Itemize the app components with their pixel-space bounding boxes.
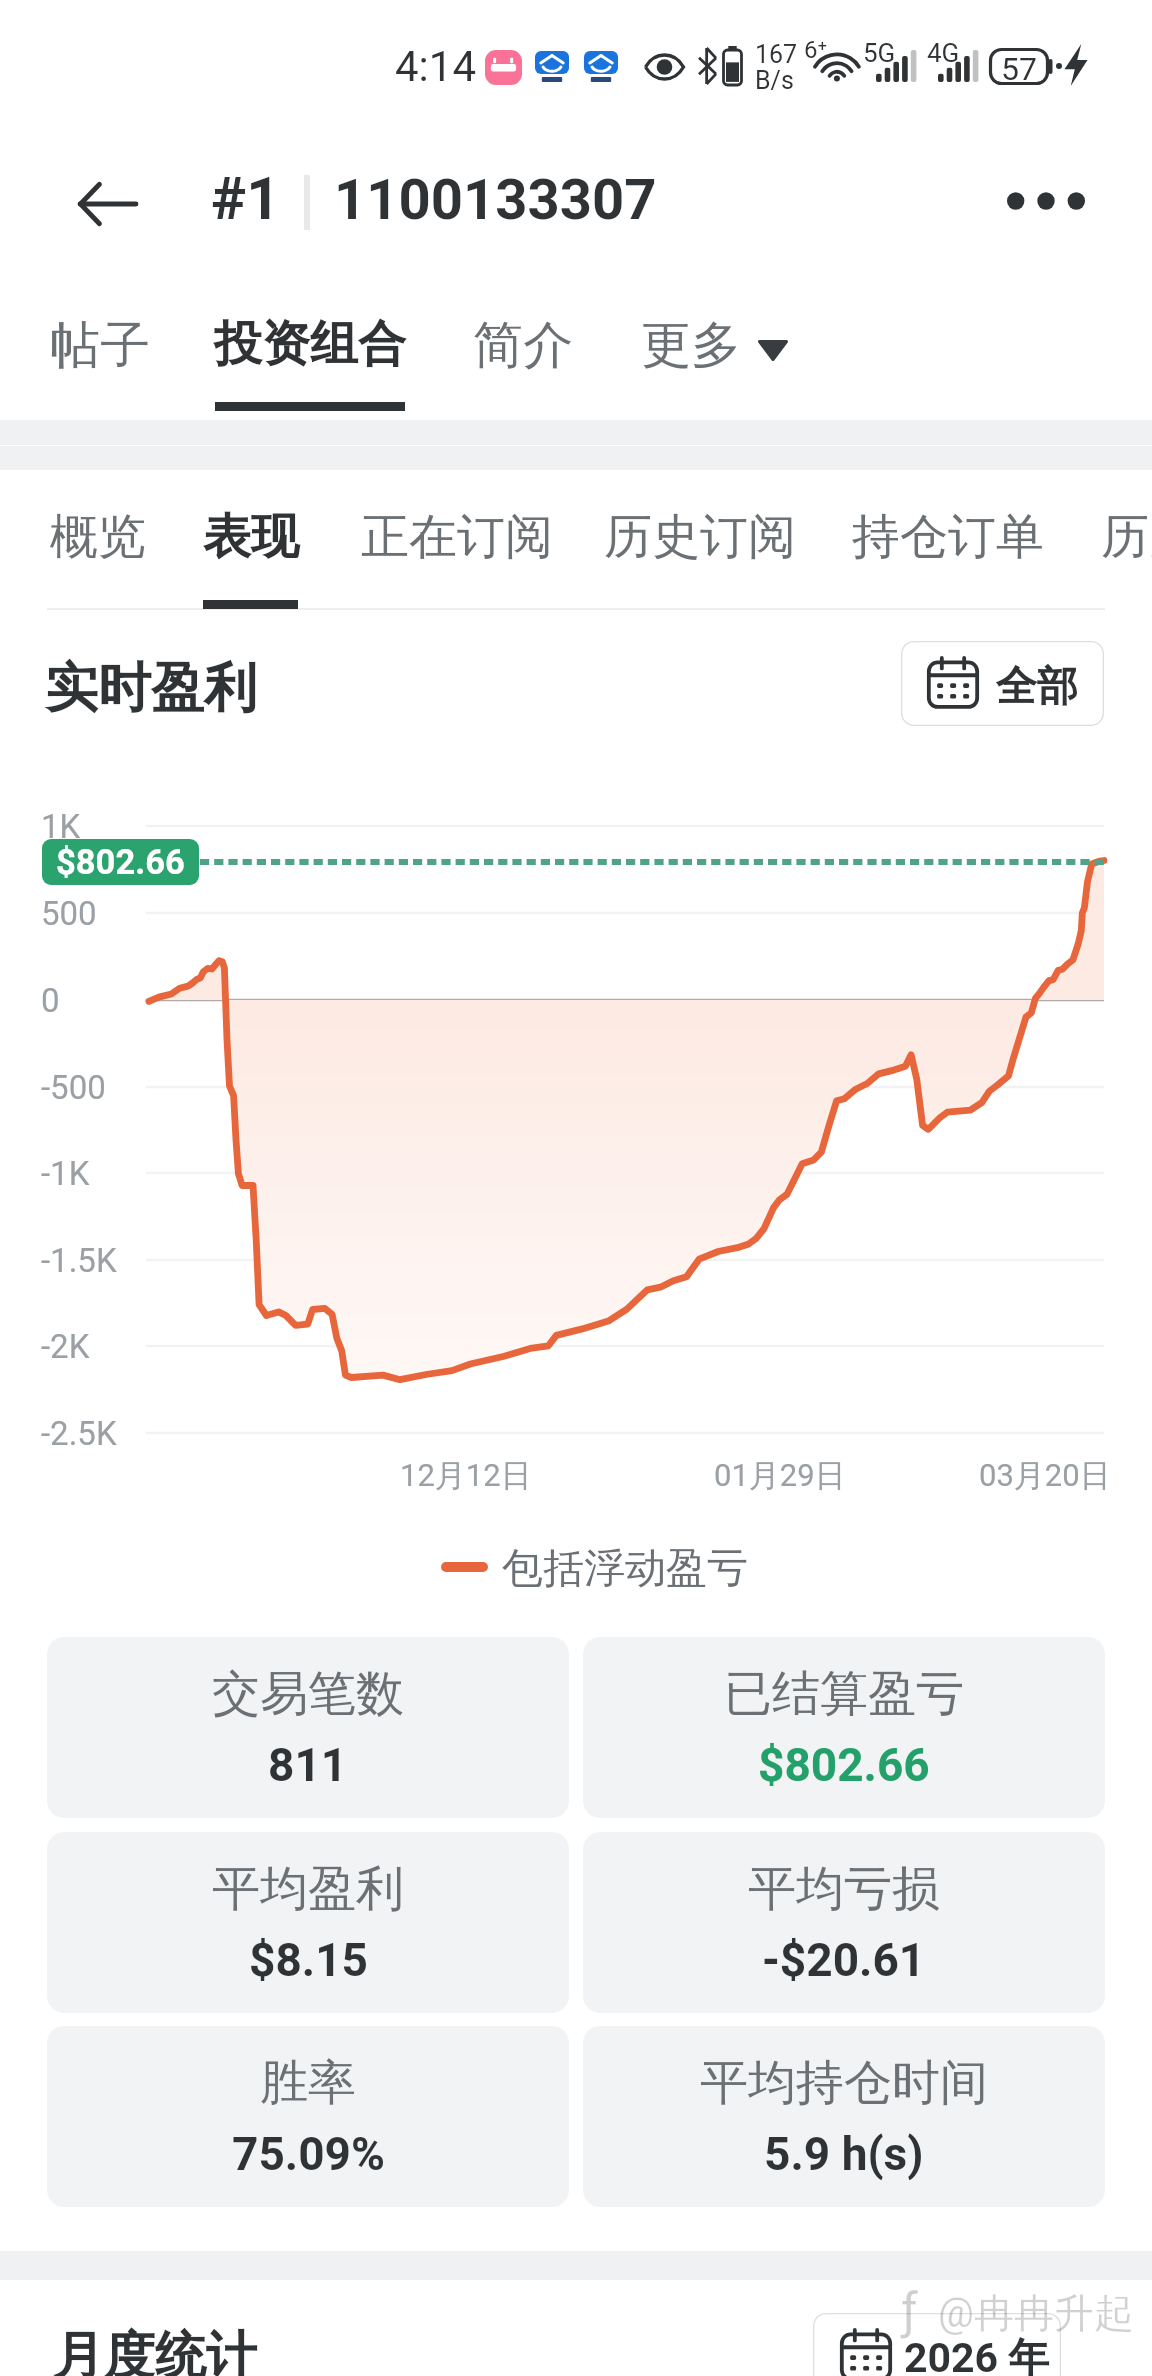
staticText: 1K bbox=[41, 807, 81, 846]
staticText: 持仓订单 bbox=[852, 507, 1044, 567]
button[interactable]: 全部 date range bbox=[901, 641, 1104, 726]
staticText: 已结算盈亏 bbox=[724, 1664, 964, 1724]
staticText: 简介 bbox=[473, 314, 573, 377]
staticText: -1.5K bbox=[41, 1241, 117, 1280]
staticText: @冉冉升起 bbox=[938, 2288, 1134, 2338]
staticText: -1K bbox=[41, 1154, 90, 1193]
staticText: -2K bbox=[41, 1327, 90, 1366]
staticText: 历史 bbox=[1101, 507, 1152, 567]
staticText: 5G bbox=[863, 38, 896, 68]
staticText: 历史订阅 bbox=[604, 507, 796, 567]
staticText: -500 bbox=[41, 1068, 106, 1107]
staticText: 500 bbox=[41, 894, 97, 933]
button[interactable] bbox=[465, 300, 579, 396]
staticText: $802.66 bbox=[56, 842, 185, 882]
staticText: 更多 bbox=[641, 314, 741, 377]
button[interactable]: Back bbox=[62, 159, 152, 249]
staticText: 4G bbox=[927, 38, 960, 68]
button[interactable] bbox=[42, 480, 154, 602]
staticText: $802.66 bbox=[758, 1738, 930, 1792]
button[interactable]: 平均亏损 bbox=[583, 1832, 1105, 2013]
staticText: 4:14 bbox=[395, 42, 476, 91]
staticText: 5.9 h(s) bbox=[764, 2127, 924, 2181]
staticText: 01月29日 bbox=[714, 1456, 846, 1495]
staticText: -2.5K bbox=[41, 1414, 117, 1453]
staticText: 包括浮动盈亏 bbox=[502, 1543, 748, 1595]
staticText: 概览 bbox=[50, 507, 146, 567]
staticText: 投资组合 bbox=[214, 314, 406, 374]
button[interactable]: 2026 年 year picker bbox=[813, 2313, 1061, 2376]
button[interactable] bbox=[1093, 480, 1152, 602]
staticText: 167 bbox=[755, 40, 798, 69]
button[interactable]: 已结算盈亏 bbox=[583, 1637, 1105, 1818]
staticText: -$20.61 bbox=[762, 1933, 926, 1987]
staticText: 1100133307 bbox=[334, 167, 657, 233]
staticText: #1 bbox=[211, 164, 281, 233]
staticText: 胜率 bbox=[260, 2053, 356, 2113]
staticText: 57 bbox=[1001, 50, 1037, 88]
staticText: 12月12日 bbox=[400, 1456, 532, 1495]
staticText: 平均亏损 bbox=[748, 1859, 940, 1919]
button[interactable]: 胜率 bbox=[47, 2026, 569, 2207]
button[interactable] bbox=[206, 300, 414, 422]
staticText: 2026 年 bbox=[904, 2333, 1050, 2376]
staticText: 帖子 bbox=[50, 314, 150, 377]
staticText: 平均盈利 bbox=[212, 1859, 404, 1919]
staticText: $8.15 bbox=[249, 1933, 368, 1987]
button[interactable]: More options bbox=[996, 161, 1096, 241]
staticText: 811 bbox=[268, 1738, 348, 1792]
staticText: 平均持仓时间 bbox=[700, 2053, 988, 2113]
button[interactable]: 平均盈利 bbox=[47, 1832, 569, 2013]
staticText: 交易笔数 bbox=[212, 1664, 404, 1724]
staticText: 表现 bbox=[203, 507, 299, 567]
staticText: 0 bbox=[41, 981, 60, 1020]
staticText: B/s bbox=[755, 66, 794, 95]
button[interactable] bbox=[633, 300, 795, 396]
button[interactable] bbox=[42, 300, 156, 396]
staticText: 正在订阅 bbox=[361, 507, 553, 567]
button[interactable] bbox=[353, 480, 555, 602]
staticText: 03月20日 bbox=[979, 1456, 1111, 1495]
button[interactable] bbox=[596, 480, 798, 602]
button[interactable] bbox=[195, 480, 306, 602]
button[interactable]: 交易笔数 bbox=[47, 1637, 569, 1818]
staticText: 月度统计 bbox=[53, 2324, 257, 2376]
button[interactable]: 平均持仓时间 bbox=[583, 2026, 1105, 2207]
staticText: 全部 bbox=[996, 661, 1078, 713]
staticText: ƒ bbox=[901, 2282, 919, 2341]
staticText: 实时盈利 bbox=[45, 655, 257, 722]
button[interactable] bbox=[844, 480, 1046, 602]
staticText: 75.09% bbox=[232, 2127, 385, 2181]
staticText: 6⁺ bbox=[804, 36, 828, 64]
